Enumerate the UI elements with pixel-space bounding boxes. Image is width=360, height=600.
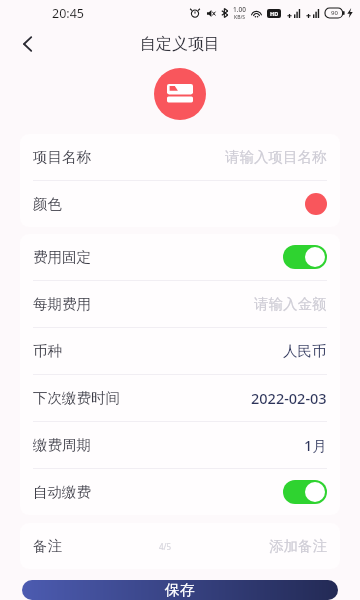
staticText: 4/5 [159,541,172,552]
staticText: 添加备注 [269,537,327,555]
staticText: 项目名称 [33,148,91,166]
staticText: 颜色 [33,195,62,213]
button[interactable] [283,480,327,504]
staticText: 2022-02-03 [251,388,327,408]
staticText: 币种 [33,342,62,360]
button[interactable]: Pick color [305,193,327,215]
staticText: 请输入项目名称 [225,148,327,166]
button[interactable]: 费用固定 [20,234,340,280]
staticText: 人民币 [283,342,327,360]
button[interactable]: Back [8,26,48,62]
button[interactable]: 下次缴费时间 [20,375,340,421]
staticText: 自动缴费 [33,483,91,501]
staticText: 自定义项目 [140,34,220,54]
button[interactable]: 自动缴费 [20,469,340,515]
button[interactable]: 保存 [22,580,338,600]
button[interactable]: Project icon [154,68,206,120]
staticText: KB/S [234,14,246,21]
staticText: 备注 [33,537,62,555]
staticText: 费用固定 [33,248,91,266]
button[interactable]: 颜色 [20,181,340,227]
staticText: HD [270,10,279,17]
button[interactable]: 每期费用 [20,281,340,327]
button[interactable] [283,245,327,269]
button[interactable]: 备注 [20,523,340,569]
button[interactable]: 缴费周期 [20,422,340,468]
staticText: 20:45 [52,5,84,22]
staticText: 90 [331,9,338,17]
button[interactable]: 币种 [20,328,340,374]
staticText: 1.00 [233,5,246,14]
staticText: 请输入金额 [254,295,327,313]
staticText: 缴费周期 [33,436,91,454]
staticText: 每期费用 [33,295,91,313]
staticText: 1月 [304,435,327,455]
button[interactable]: 项目名称 [20,134,340,180]
staticText: 下次缴费时间 [33,389,120,407]
staticText: 保存 [165,581,195,600]
